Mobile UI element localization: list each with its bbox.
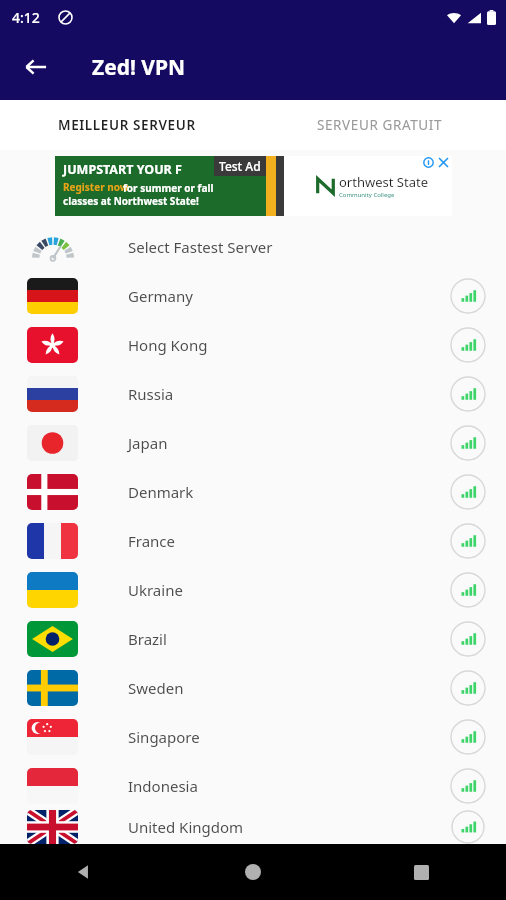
staticText: Brazil [128,629,450,649]
button[interactable]: Sweden [0,663,506,712]
staticText: 4:12 [12,8,40,27]
staticText: Japan [128,433,450,453]
button[interactable]: United Kingdom [0,810,506,844]
staticText: SERVEUR GRATUIT [317,116,443,134]
button[interactable]: JUMPSTART YOUR F [55,156,452,216]
staticText: orthwest State [339,173,428,191]
button[interactable]: France [0,516,506,565]
staticText: Denmark [128,482,450,502]
staticText: Sweden [128,678,450,698]
button[interactable]: Select Fastest Server [0,222,506,271]
staticText: Select Fastest Server [128,237,273,257]
staticText: Hong Kong [128,335,450,355]
staticText: MEILLEUR SERVEUR [58,116,196,134]
staticText: Russia [128,384,450,404]
button[interactable]: Japan [0,418,506,467]
button[interactable]: Singapore [0,712,506,761]
button[interactable]: MEILLEUR SERVEUR [0,100,253,150]
staticText: JUMPSTART YOUR F [63,161,182,178]
button[interactable]: Russia [0,369,506,418]
staticText: United Kingdom [128,817,450,837]
staticText: Register now [63,180,129,194]
staticText: Test Ad [219,158,261,174]
button[interactable]: Germany [0,271,506,320]
staticText: Ukraine [128,580,450,600]
button[interactable]: Hong Kong [0,320,506,369]
staticText: France [128,531,450,551]
button[interactable]: Home [168,844,337,900]
button[interactable]: Back [0,844,168,900]
staticText: for summer or fall [123,181,214,195]
button[interactable]: Indonesia [0,761,506,810]
staticText: classes at Northwest State! [63,194,199,208]
button[interactable]: Ukraine [0,565,506,614]
button[interactable]: Back [12,43,60,91]
button[interactable]: Denmark [0,467,506,516]
staticText: Germany [128,286,450,306]
button[interactable]: SERVEUR GRATUIT [253,100,506,150]
button[interactable]: Brazil [0,614,506,663]
staticText: Community College [339,191,395,199]
staticText: Indonesia [128,776,450,796]
button[interactable]: Recent apps [337,844,506,900]
staticText: Singapore [128,727,450,747]
staticText: Zed! VPN [92,53,186,82]
